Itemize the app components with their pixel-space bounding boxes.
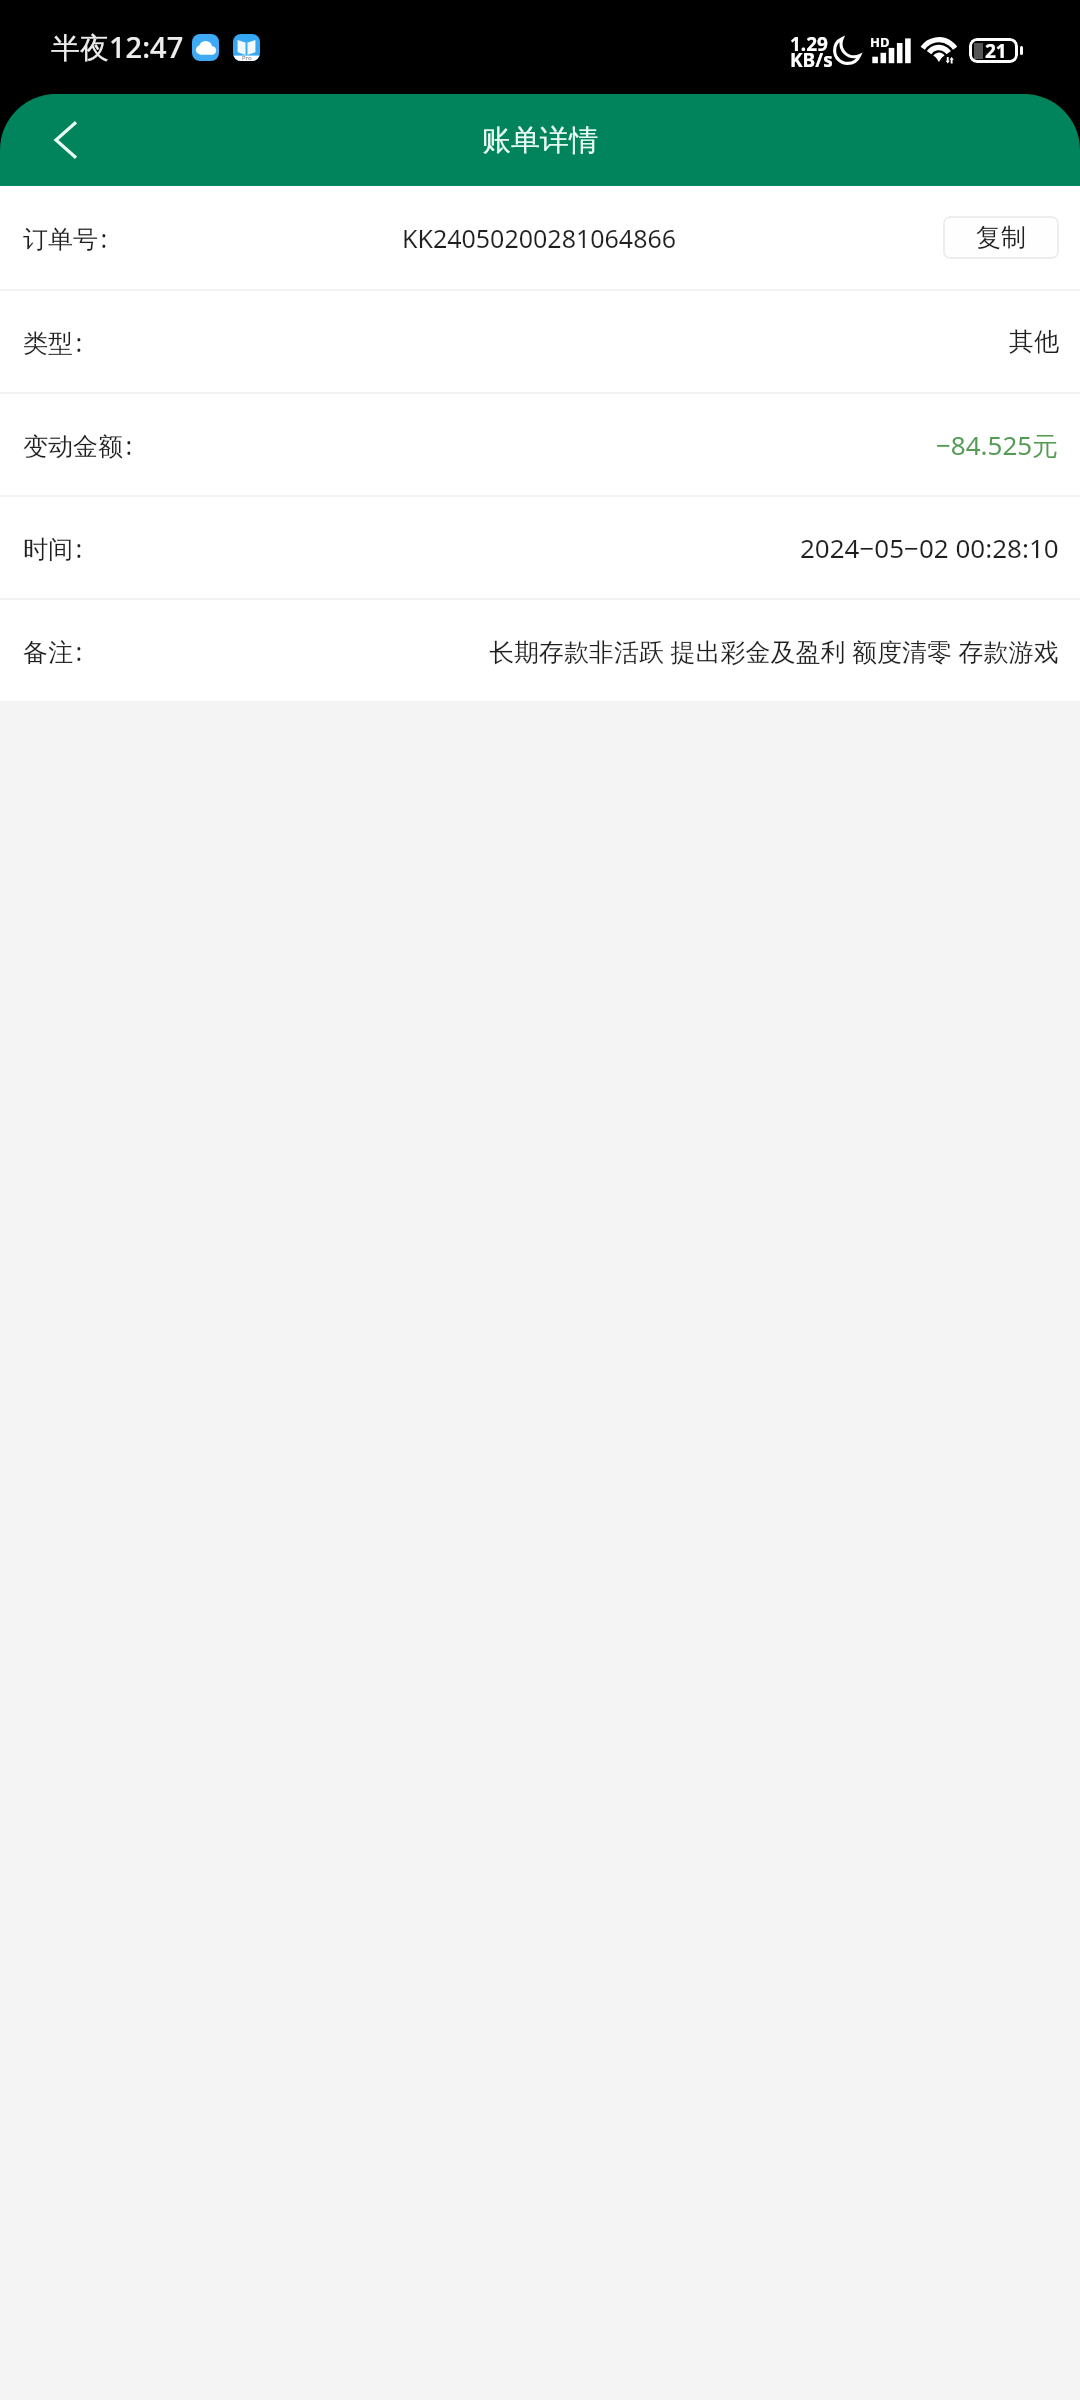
staticText: 21	[985, 38, 1007, 63]
staticText: 变动金额 :	[23, 428, 133, 462]
staticText: 半夜12:47	[51, 27, 184, 67]
button[interactable]: Back	[30, 104, 102, 176]
staticText: 备注 :	[23, 634, 83, 668]
staticText: 其他	[1009, 326, 1059, 357]
staticText: Pro	[242, 54, 252, 61]
staticText: 账单详情	[482, 122, 598, 159]
staticText: KK24050200281064866	[135, 221, 943, 255]
staticText: 类型 :	[23, 325, 83, 359]
staticText: 长期存款非活跃 提出彩金及盈利 额度清零 存款游戏	[489, 634, 1059, 668]
staticText: −84.525元	[936, 427, 1059, 463]
staticText: 订单号 :	[23, 221, 108, 255]
staticText: KB/s	[790, 47, 833, 73]
button[interactable]: 复制	[943, 216, 1059, 259]
staticText: 复制	[976, 222, 1026, 253]
staticText: 2024−05−02 00:28:10	[800, 530, 1059, 565]
staticText: HD	[870, 33, 890, 51]
staticText: 1.29	[790, 31, 828, 57]
staticText: 时间 :	[23, 531, 83, 565]
